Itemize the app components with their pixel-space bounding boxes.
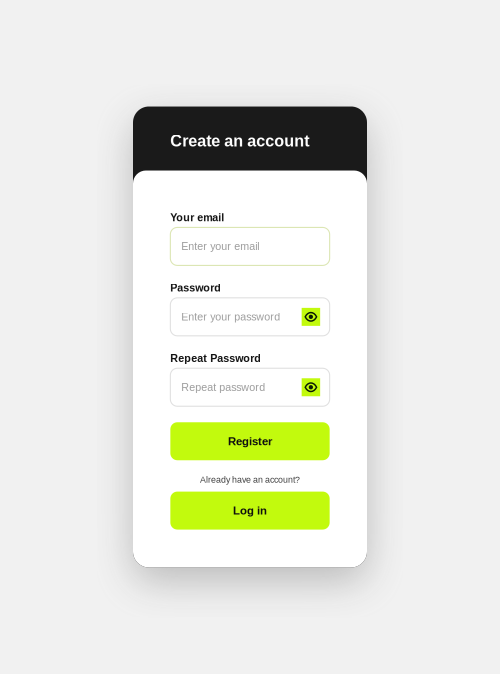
button[interactable]: Register (170, 422, 330, 460)
staticText: Create an account (170, 132, 309, 150)
staticText: Enter your password (181, 311, 280, 323)
staticText: Repeat password (181, 381, 265, 393)
button[interactable]: Enter your password (170, 298, 330, 336)
staticText: Already have an account? (200, 475, 300, 485)
staticText: Repeat Password (170, 352, 261, 364)
button[interactable]: Show password (302, 378, 320, 396)
button[interactable]: Enter your email (170, 227, 330, 265)
button[interactable]: Show password (302, 308, 320, 326)
staticText: Register (228, 435, 272, 448)
staticText: Password (170, 282, 221, 294)
button[interactable]: Repeat password (170, 368, 330, 406)
staticText: Enter your email (181, 240, 259, 252)
staticText: Log in (233, 504, 267, 517)
button[interactable]: Log in (170, 492, 330, 530)
staticText: Your email (170, 211, 224, 223)
